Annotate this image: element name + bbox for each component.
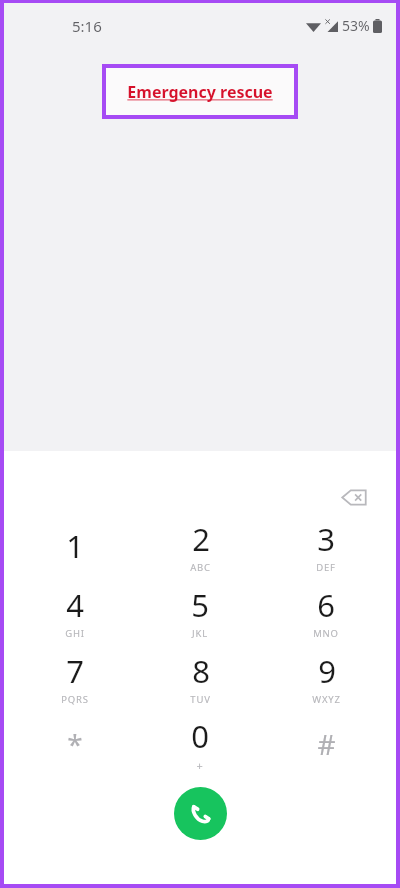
staticText: 8: [192, 650, 210, 692]
staticText: #: [317, 725, 336, 763]
staticText: WXYZ: [312, 693, 341, 706]
staticText: Emergency rescue: [127, 81, 273, 103]
staticText: 2: [192, 518, 210, 560]
button[interactable]: 7: [20, 645, 130, 711]
staticText: ABC: [190, 561, 211, 574]
staticText: JKL: [192, 627, 208, 640]
button[interactable]: Backspace: [334, 477, 374, 517]
button[interactable]: 3: [271, 513, 381, 579]
staticText: 4: [66, 584, 84, 626]
button[interactable]: 1: [20, 513, 130, 579]
button[interactable]: 4: [20, 579, 130, 645]
button[interactable]: 2: [145, 513, 255, 579]
button[interactable]: 5: [145, 579, 255, 645]
button[interactable]: Emergency rescue: [102, 64, 298, 119]
staticText: 0: [191, 715, 209, 757]
staticText: GHI: [65, 627, 85, 640]
staticText: 7: [66, 650, 84, 692]
staticText: TUV: [190, 693, 211, 706]
button[interactable]: Call: [174, 787, 227, 840]
staticText: 53%: [342, 16, 370, 35]
staticText: MNO: [313, 627, 339, 640]
button[interactable]: 6: [271, 579, 381, 645]
staticText: DEF: [316, 561, 336, 574]
staticText: PQRS: [61, 693, 89, 706]
staticText: 9: [318, 650, 336, 692]
staticText: 5: [191, 584, 209, 626]
button[interactable]: 9: [271, 645, 381, 711]
staticText: 3: [317, 518, 335, 560]
staticText: *: [67, 725, 83, 763]
staticText: +: [196, 758, 204, 773]
button[interactable]: 8: [145, 645, 255, 711]
button[interactable]: *: [20, 711, 130, 777]
staticText: 1: [66, 525, 84, 567]
button[interactable]: 0: [145, 711, 255, 777]
staticText: 5:16: [72, 16, 102, 36]
staticText: 6: [317, 584, 335, 626]
button[interactable]: #: [271, 711, 381, 777]
